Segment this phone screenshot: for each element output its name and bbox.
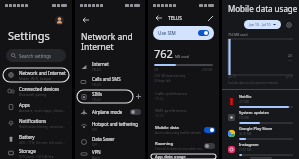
button[interactable]: Airplane mode <box>75 104 145 119</box>
button[interactable]: Network and Internet <box>0 67 72 83</box>
button[interactable]: Data Saver <box>75 134 145 149</box>
staticText: MB used <box>175 54 189 59</box>
button[interactable]: Apps <box>0 99 72 115</box>
staticText: App data usage <box>155 154 186 159</box>
staticText: Connected devices <box>19 86 60 92</box>
staticText: Notification history, conversations <box>19 125 66 129</box>
staticText: Connect to data services when roaming <box>155 147 204 151</box>
staticText: TELUS <box>92 68 101 72</box>
staticText: 44% - 17hr, 3m min. left until full <box>19 141 66 145</box>
staticText: System updates <box>239 110 269 115</box>
staticText: Network and Internet <box>81 31 139 52</box>
staticText: 29 days left <box>154 79 171 83</box>
staticText: Excludes data used by operator networks <box>228 81 279 85</box>
button[interactable]: Calls preference <box>148 88 219 105</box>
staticText: Netflix <box>239 94 252 99</box>
staticText: 21.81 MB <box>239 148 252 152</box>
staticText: Apps <box>19 102 30 108</box>
staticText: 46.35 MB <box>239 132 252 136</box>
staticText: Mobile data usage <box>228 3 298 14</box>
button[interactable]: Google Play Store <box>222 125 299 141</box>
staticText: Google Play Store <box>239 126 273 131</box>
staticText: Calls preference <box>155 90 188 96</box>
staticText: Network and Internet <box>19 70 66 76</box>
staticText: 762 MB used <box>228 33 248 37</box>
staticText: 2.00 GB data warning <box>154 74 186 78</box>
button[interactable]: Battery <box>0 131 72 147</box>
button[interactable]: Storage <box>0 147 72 159</box>
staticText: GB <box>288 58 292 61</box>
staticText: Battery <box>19 134 35 140</box>
staticText: 156 MB <box>239 116 249 120</box>
staticText: Calls and SMS <box>92 76 121 82</box>
staticText: Jun 10 - Jul 10 <box>249 22 271 27</box>
staticText: Mobile data <box>155 124 179 130</box>
staticText: TELUS <box>155 114 164 118</box>
button[interactable]: System updates <box>222 109 299 125</box>
staticText: Roaming <box>155 140 174 146</box>
button[interactable]: Mobile data <box>148 122 219 138</box>
staticText: 762 <box>154 46 173 61</box>
button[interactable]: Back <box>153 13 164 23</box>
staticText: Bluetooth, pairing <box>19 93 47 97</box>
button[interactable]: Notifications <box>0 115 72 131</box>
button[interactable]: Edit <box>206 14 214 22</box>
button[interactable]: Calls and SMS <box>75 74 145 89</box>
button[interactable]: Back <box>80 14 91 25</box>
staticText: Instagram <box>239 142 259 147</box>
button[interactable]: Netflix <box>222 93 299 109</box>
staticText: Data Saver <box>92 136 115 142</box>
staticText: TELUS <box>92 98 101 102</box>
staticText: Storage <box>19 148 36 154</box>
button[interactable]: Account <box>55 16 64 25</box>
button[interactable]: Connected devices <box>0 83 72 99</box>
staticText: Settings <box>8 28 50 43</box>
staticText: 477 MB <box>239 100 249 104</box>
staticText: Assistant, recent apps, default apps <box>19 109 66 113</box>
staticText: 57% used - 137 GB free <box>19 155 54 159</box>
button[interactable]: Instagram <box>222 141 299 157</box>
staticText: TELUS <box>168 15 182 22</box>
staticText: Jun 10 <box>228 75 236 79</box>
staticText: Jul 10 <box>286 75 293 79</box>
button[interactable]: Internet <box>75 59 145 74</box>
staticText: 0 B <box>154 68 159 72</box>
staticText: Internet <box>92 61 109 67</box>
staticText: Hotspot and tethering <box>92 121 138 127</box>
staticText: SIMs <box>92 91 102 97</box>
button[interactable]: Roaming <box>148 138 219 154</box>
button[interactable]: App data usage <box>148 154 219 159</box>
button[interactable]: SIMs <box>75 89 145 104</box>
button[interactable]: Settings <box>285 21 293 29</box>
button[interactable]: Jun 10 - Jul 10 <box>244 20 281 29</box>
button[interactable]: Use SIM <box>153 26 214 40</box>
staticText: Airplane mode <box>92 109 123 115</box>
staticText: Use SIM <box>158 30 176 36</box>
button[interactable]: VPN <box>75 149 145 159</box>
staticText: Off <box>92 128 97 132</box>
staticText: Off <box>92 143 97 147</box>
staticText: Access data using mobile network <box>155 131 202 135</box>
staticText: SMS preference <box>155 107 187 113</box>
button[interactable]: Search settings <box>6 49 66 62</box>
button[interactable]: SMS preference <box>148 105 219 122</box>
staticText: Search settings <box>19 53 52 59</box>
staticText: TELUS <box>155 97 164 101</box>
staticText: 2.0 <box>288 54 292 58</box>
staticText: 2.00 GB <box>202 68 213 72</box>
button[interactable]: Hotspot and tethering <box>75 119 145 134</box>
button[interactable]: Airplane mode toggle <box>130 109 141 115</box>
staticText: VPN <box>92 149 101 155</box>
staticText: None <box>92 156 100 159</box>
staticText: Mobile, Wi-Fi, hotspot <box>19 77 52 81</box>
staticText: Notifications <box>19 118 47 124</box>
staticText: TELUS <box>92 83 101 87</box>
